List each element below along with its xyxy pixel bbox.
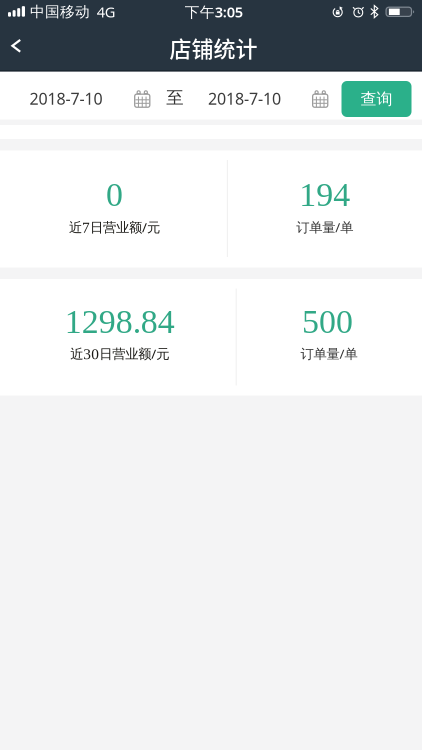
staticText: 下午3:05	[185, 2, 243, 21]
staticText: 订单量/单	[296, 218, 353, 236]
staticText: 2018-7-10	[29, 88, 102, 109]
button[interactable]: 开始日期	[29, 88, 150, 109]
staticText: 194	[299, 176, 350, 213]
button[interactable]: 查询	[341, 81, 411, 117]
staticText: 近30日营业额/元	[70, 345, 169, 362]
button[interactable]: 结束日期	[208, 88, 328, 109]
staticText: 中国移动	[30, 3, 90, 21]
staticText: 4G	[97, 2, 116, 22]
staticText: 近7日营业额/元	[69, 218, 160, 236]
staticText: 查询	[360, 89, 392, 109]
staticText: 2018-7-10	[208, 88, 281, 109]
staticText: 0	[106, 176, 123, 213]
staticText: 至	[166, 87, 183, 108]
button[interactable]: 返回	[0, 30, 32, 62]
staticText: 订单量/单	[300, 345, 357, 362]
staticText: 1298.84	[65, 303, 175, 340]
staticText: 500	[302, 303, 353, 340]
staticText: 店铺统计	[169, 31, 257, 63]
